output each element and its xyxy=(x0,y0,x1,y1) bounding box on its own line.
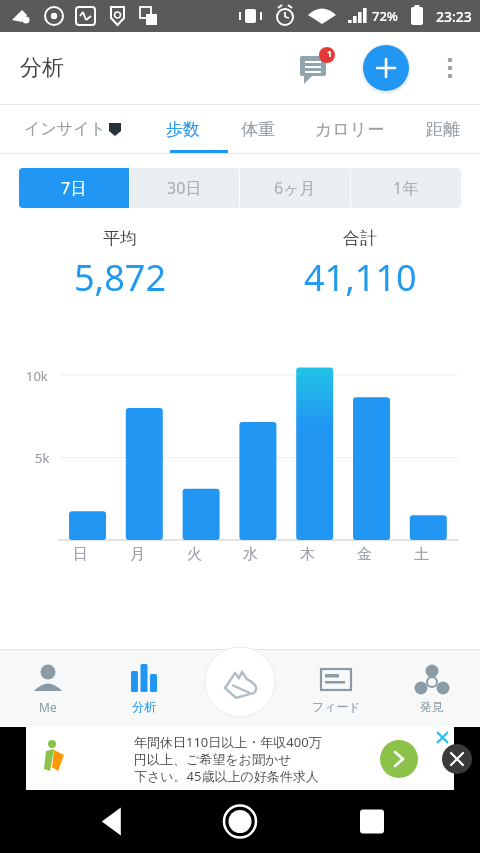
staticText: 合計 xyxy=(343,228,377,249)
staticText: 7日 xyxy=(61,177,87,199)
staticText: 土 xyxy=(414,545,429,564)
button[interactable]: 30日 xyxy=(129,168,239,208)
button[interactable]: Close ad xyxy=(442,744,472,774)
staticText: 体重 xyxy=(241,119,275,140)
button[interactable]: 距離 xyxy=(405,105,480,153)
staticText: 72% xyxy=(372,7,398,25)
staticText: 日 xyxy=(73,545,88,564)
staticText: 23:23 xyxy=(436,7,472,26)
staticText: 木 xyxy=(300,545,315,564)
button[interactable]: 体重 xyxy=(220,105,295,153)
button[interactable]: インサイト xyxy=(0,105,145,153)
staticText: 水 xyxy=(243,545,258,564)
staticText: 5,872 xyxy=(74,253,167,302)
button[interactable]: 6ヶ月 xyxy=(239,168,350,208)
staticText: 30日 xyxy=(167,177,202,199)
staticText: 火 xyxy=(187,545,202,564)
staticText: 分析 xyxy=(20,54,64,82)
button[interactable]: 1年 xyxy=(350,168,461,208)
staticText: 距離 xyxy=(426,119,460,140)
button[interactable]: カロリー xyxy=(295,105,405,153)
staticText: 1年 xyxy=(393,177,419,199)
button[interactable]: Start activity xyxy=(192,649,288,727)
staticText: 下さい。45歳以上の好条件求人 xyxy=(134,767,319,785)
button[interactable]: 歩数 xyxy=(145,105,220,153)
staticText: 円以上、ご希望をお聞かせ xyxy=(134,751,292,767)
staticText: 分析 xyxy=(132,699,156,714)
staticText: 41,110 xyxy=(304,253,417,302)
button[interactable]: Add xyxy=(360,42,412,94)
staticText: 6ヶ月 xyxy=(274,177,316,199)
staticText: 月 xyxy=(130,545,145,564)
button[interactable]: Messages xyxy=(294,46,338,90)
staticText: フィード xyxy=(312,699,361,714)
button[interactable]: フィード xyxy=(288,649,384,727)
button[interactable]: 7日 xyxy=(19,168,129,208)
staticText: 平均 xyxy=(103,228,137,249)
button[interactable]: More options xyxy=(430,48,470,88)
staticText: インサイト xyxy=(24,119,106,139)
button[interactable]: Me xyxy=(0,649,96,727)
button[interactable]: 発見 xyxy=(384,649,480,727)
staticText: 歩数 xyxy=(166,119,200,140)
staticText: 年間休日110日以上・年収400万 xyxy=(134,733,322,751)
staticText: 発見 xyxy=(420,699,444,714)
staticText: 5k xyxy=(35,449,50,467)
button[interactable]: 分析 xyxy=(96,649,192,727)
staticText: 金 xyxy=(357,545,372,564)
staticText: Me xyxy=(39,699,57,715)
staticText: 10k xyxy=(26,367,48,385)
staticText: カロリー xyxy=(315,119,385,140)
staticText: 1 xyxy=(327,47,333,59)
button[interactable]: Open ad xyxy=(380,740,418,778)
